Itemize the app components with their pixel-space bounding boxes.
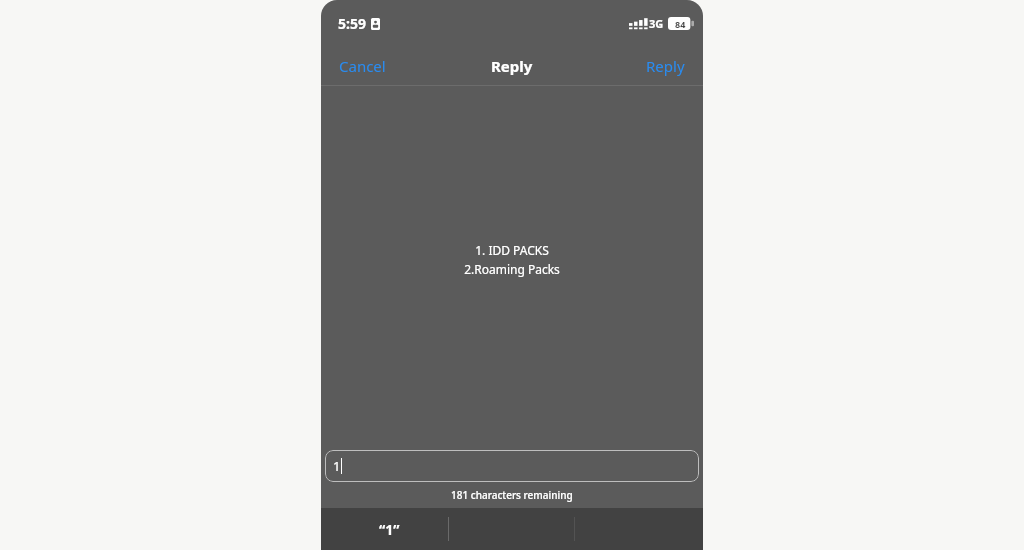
- button[interactable]: Reply: [628, 50, 703, 82]
- staticText: Cancel: [339, 56, 386, 76]
- staticText: 1: [333, 457, 341, 475]
- staticText: 3G: [649, 16, 664, 31]
- staticText: 2.Roaming Packs: [464, 261, 560, 277]
- staticText: Reply: [491, 56, 533, 76]
- staticText: 5:59: [338, 14, 366, 33]
- button[interactable]: Cancel: [321, 50, 404, 82]
- button[interactable]: “1”: [365, 514, 414, 545]
- staticText: Reply: [646, 56, 685, 76]
- staticText: 84: [675, 18, 686, 30]
- staticText: “1”: [379, 520, 400, 539]
- staticText: 181 characters remaining: [451, 488, 573, 502]
- button[interactable]: 1: [325, 450, 699, 482]
- staticText: 1. IDD PACKS: [475, 242, 549, 258]
